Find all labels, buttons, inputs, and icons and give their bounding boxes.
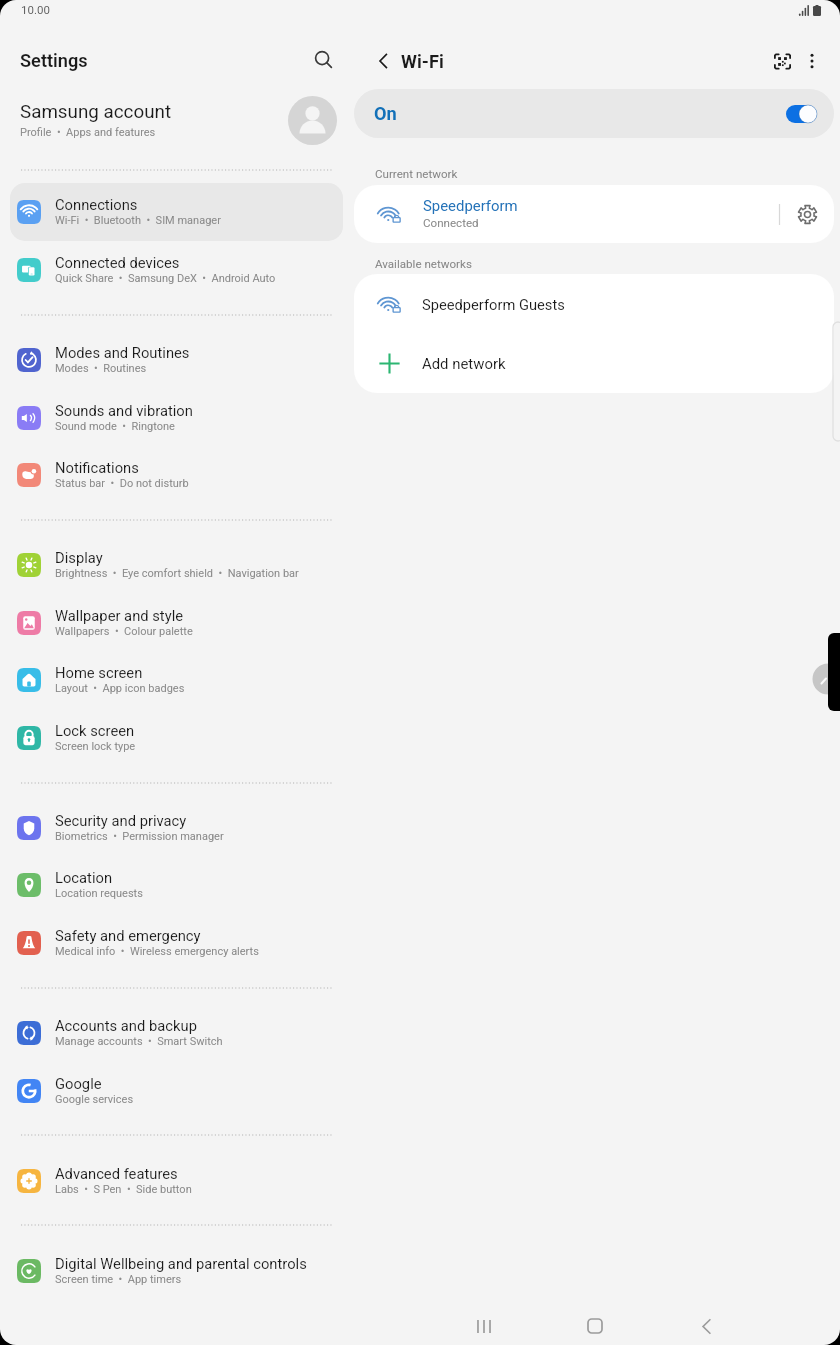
staticText: Speedperform (423, 197, 518, 214)
staticText: Safety and emergency (55, 927, 201, 944)
staticText: Labs • S Pen • Side button (55, 1183, 192, 1196)
staticText: Display (55, 549, 103, 566)
button[interactable]: Modes and Routines (10, 331, 343, 389)
staticText: Accounts and backup (55, 1017, 197, 1034)
staticText: Connected devices (55, 254, 180, 271)
staticText: Advanced features (55, 1165, 178, 1182)
button[interactable]: Back (365, 42, 403, 80)
staticText: Quick Share • Samsung DeX • Android Auto (55, 272, 276, 285)
staticText: Medical info • Wireless emergency alerts (55, 945, 259, 958)
staticText: Google services (55, 1093, 134, 1106)
staticText: Current network (375, 167, 458, 181)
button[interactable]: Speedperform Guests (354, 274, 834, 333)
button[interactable]: Edge panel (810, 660, 840, 698)
button[interactable]: On (354, 89, 834, 138)
button[interactable]: Back (687, 1307, 725, 1345)
button[interactable]: Display (10, 536, 343, 594)
button[interactable]: Add network (354, 333, 834, 393)
button[interactable]: Wallpaper and style (10, 594, 343, 652)
button[interactable]: Network settings (788, 195, 826, 233)
staticText: Brightness • Eye comfort shield • Naviga… (55, 567, 299, 580)
staticText: Location (55, 869, 113, 886)
staticText: Manage accounts • Smart Switch (55, 1035, 223, 1048)
button[interactable]: Digital Wellbeing and parental controls (10, 1242, 343, 1300)
staticText: On (374, 103, 397, 124)
staticText: Available networks (375, 257, 472, 271)
staticText: Wallpapers • Colour palette (55, 625, 193, 638)
staticText: Modes and Routines (55, 344, 190, 361)
staticText: Location requests (55, 887, 143, 900)
staticText: Wi-Fi • Bluetooth • SIM manager (55, 214, 221, 227)
button[interactable]: Recents (465, 1307, 503, 1345)
staticText: Profile • Apps and features (20, 126, 156, 139)
button[interactable]: Scan QR code (763, 42, 801, 80)
staticText: Security and privacy (55, 812, 187, 829)
button[interactable]: Speedperform (354, 185, 834, 243)
staticText: Status bar • Do not disturb (55, 477, 189, 490)
button[interactable]: Home screen (10, 651, 343, 709)
button[interactable]: Notifications (10, 446, 343, 504)
staticText: Speedperform Guests (422, 296, 565, 313)
staticText: Biometrics • Permission manager (55, 830, 224, 843)
button[interactable]: Samsung account (0, 90, 353, 152)
staticText: Connections (55, 196, 138, 213)
staticText: 10.00 (21, 3, 50, 16)
staticText: Samsung account (20, 101, 172, 123)
staticText: Add network (422, 355, 506, 372)
button[interactable]: Sounds and vibration (10, 389, 343, 447)
staticText: Layout • App icon badges (55, 682, 185, 695)
staticText: Connected (423, 216, 479, 230)
button[interactable]: Search (305, 41, 343, 79)
button[interactable]: Connected devices (10, 241, 343, 299)
staticText: Home screen (55, 664, 143, 681)
staticText: Google (55, 1075, 102, 1092)
staticText: Settings (20, 50, 88, 71)
button[interactable]: Google (10, 1062, 343, 1120)
staticText: Screen time • App timers (55, 1273, 182, 1286)
staticText: Wallpaper and style (55, 607, 184, 624)
staticText: Lock screen (55, 722, 135, 739)
staticText: Notifications (55, 459, 139, 476)
staticText: Digital Wellbeing and parental controls (55, 1255, 307, 1272)
button[interactable]: Connections (10, 183, 343, 241)
button[interactable]: Advanced features (10, 1152, 343, 1210)
button[interactable]: Security and privacy (10, 799, 343, 857)
button[interactable]: Safety and emergency (10, 914, 343, 972)
button[interactable]: Home (576, 1307, 614, 1345)
staticText: Modes • Routines (55, 362, 147, 375)
staticText: Wi-Fi (401, 51, 444, 72)
staticText: Screen lock type (55, 740, 136, 753)
button[interactable]: Location (10, 856, 343, 914)
button[interactable]: Accounts and backup (10, 1004, 343, 1062)
button[interactable]: More options (793, 42, 831, 80)
staticText: Sound mode • Ringtone (55, 420, 175, 433)
staticText: Sounds and vibration (55, 402, 193, 419)
button[interactable]: Lock screen (10, 709, 343, 767)
